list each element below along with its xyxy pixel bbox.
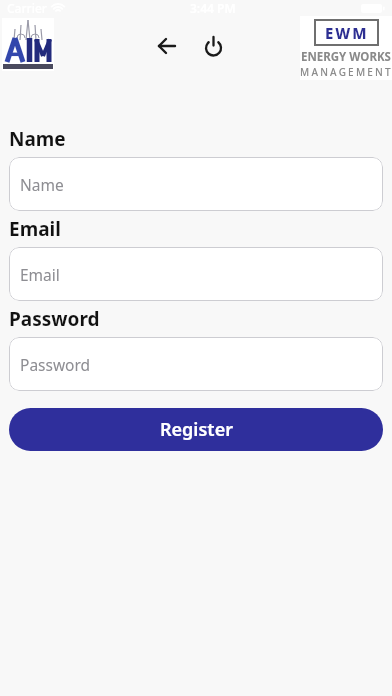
staticText: Email: [20, 264, 60, 285]
button[interactable]: Register: [9, 408, 383, 451]
staticText: ENERGY WORKS: [301, 49, 391, 65]
staticText: Register: [160, 417, 233, 442]
staticText: EWM: [325, 23, 369, 43]
button[interactable]: [199, 32, 227, 60]
staticText: Name: [9, 126, 66, 152]
staticText: MANAGEMENT: [300, 65, 392, 79]
button[interactable]: Name: [9, 157, 383, 211]
button[interactable]: Password: [9, 337, 383, 391]
staticText: Name: [20, 174, 64, 195]
staticText: Email: [9, 216, 61, 242]
button[interactable]: [153, 32, 181, 60]
staticText: Password: [9, 306, 100, 332]
button[interactable]: Email: [9, 247, 383, 301]
staticText: Password: [20, 354, 91, 375]
